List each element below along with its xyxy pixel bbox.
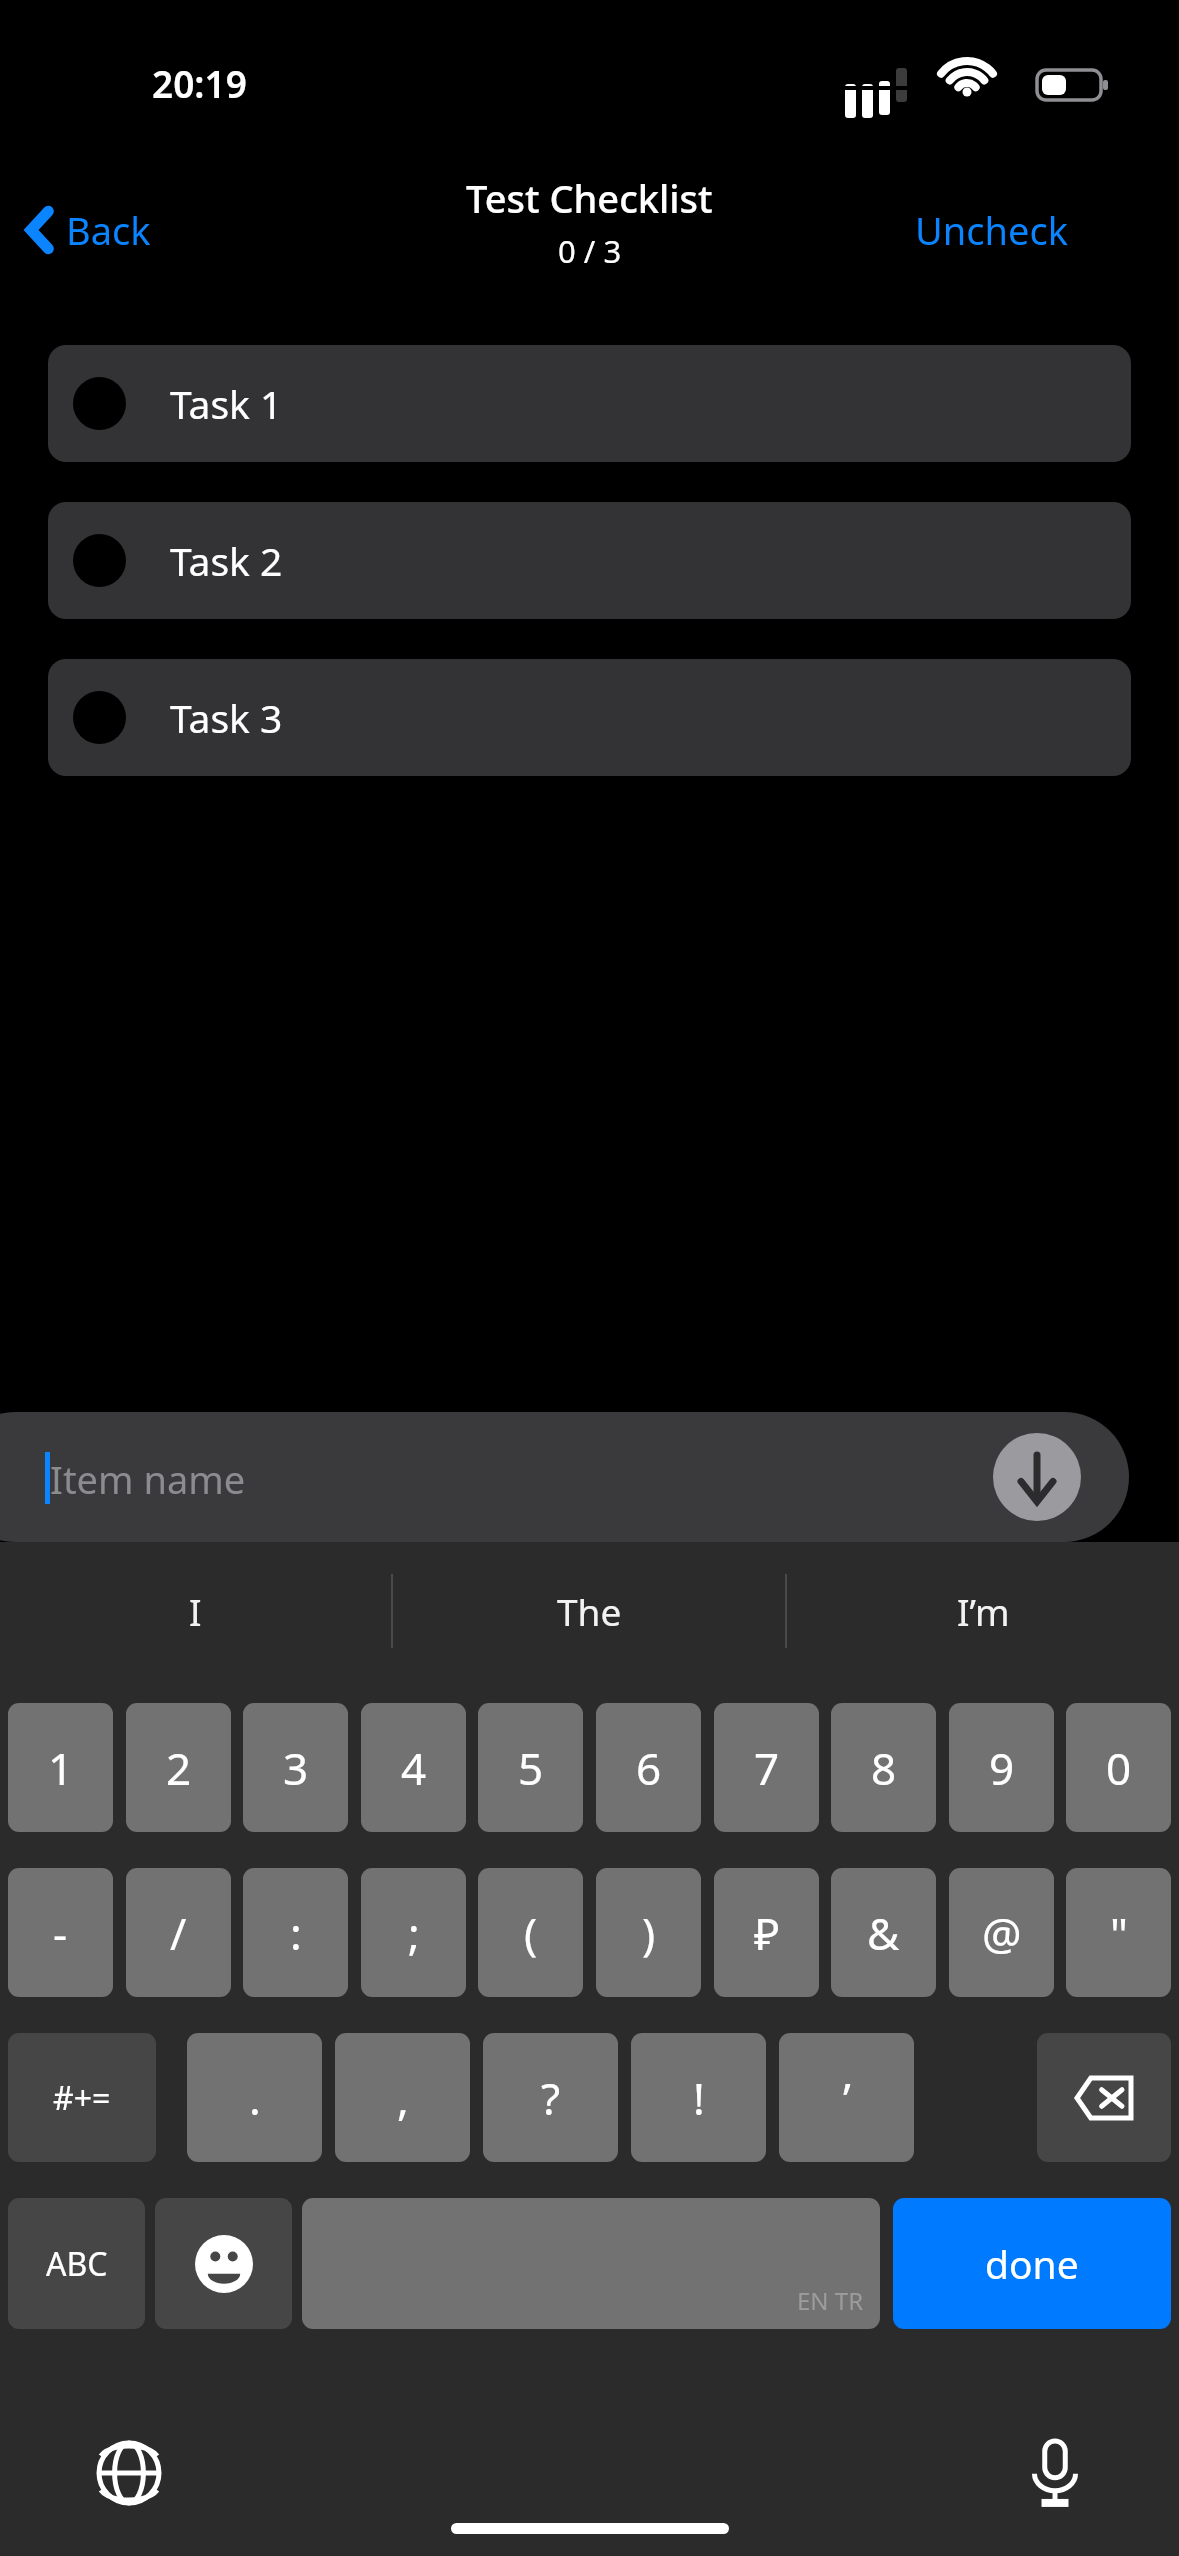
staticText: I xyxy=(189,1586,202,1636)
button[interactable]: ₽ xyxy=(714,1868,819,1997)
button[interactable]: @ xyxy=(949,1868,1054,1997)
staticText: Task 2 xyxy=(170,534,283,587)
staticText: . xyxy=(249,2068,261,2128)
staticText: 4 xyxy=(401,1738,427,1798)
button[interactable]: #+= xyxy=(8,2033,156,2162)
staticText: @ xyxy=(982,1903,1022,1963)
staticText: 8 xyxy=(871,1738,897,1798)
staticText: #+= xyxy=(53,2076,111,2120)
staticText: ’ xyxy=(843,2068,851,2128)
staticText: Uncheck xyxy=(915,204,1068,256)
button[interactable]: Emoji xyxy=(155,2198,292,2329)
button[interactable]: Backspace xyxy=(1037,2033,1171,2162)
button[interactable]: ( xyxy=(478,1868,583,1997)
staticText: 7 xyxy=(754,1738,780,1798)
button[interactable]: Dictation xyxy=(1012,2430,1098,2516)
staticText: Task 1 xyxy=(170,377,283,430)
button[interactable]: 3 xyxy=(243,1703,348,1832)
button[interactable]: . xyxy=(187,2033,322,2162)
staticText: 6 xyxy=(636,1738,662,1798)
staticText: I’m xyxy=(957,1586,1010,1636)
button[interactable]: : xyxy=(243,1868,348,1997)
button[interactable]: Uncheck xyxy=(915,188,1160,272)
button[interactable]: Hide keyboard xyxy=(993,1433,1081,1521)
staticText: 2 xyxy=(166,1738,192,1798)
button[interactable]: The xyxy=(393,1542,785,1679)
button[interactable]: Task 1 xyxy=(48,345,1131,462)
button[interactable]: Item name xyxy=(0,1412,1129,1542)
staticText: The xyxy=(557,1586,622,1636)
staticText: ₽ xyxy=(754,1903,780,1963)
button[interactable]: - xyxy=(8,1868,113,1997)
button[interactable]: Back xyxy=(0,188,250,272)
button[interactable]: ABC xyxy=(8,2198,145,2329)
button[interactable]: 5 xyxy=(478,1703,583,1832)
staticText: : xyxy=(290,1903,302,1963)
button[interactable]: 9 xyxy=(949,1703,1054,1832)
staticText: 9 xyxy=(989,1738,1015,1798)
staticText: 0 / 3 xyxy=(558,230,622,272)
button[interactable]: done xyxy=(893,2198,1171,2329)
button[interactable]: I’m xyxy=(787,1542,1179,1679)
button[interactable]: ; xyxy=(361,1868,466,1997)
staticText: ? xyxy=(541,2068,561,2128)
button[interactable]: 8 xyxy=(831,1703,936,1832)
button[interactable]: ) xyxy=(596,1868,701,1997)
staticText: & xyxy=(867,1903,900,1963)
button[interactable]: Task 2 xyxy=(48,502,1131,619)
button[interactable]: 4 xyxy=(361,1703,466,1832)
button[interactable]: ’ xyxy=(779,2033,914,2162)
button[interactable]: Task 3 xyxy=(48,659,1131,776)
button[interactable]: 6 xyxy=(596,1703,701,1832)
button[interactable]: & xyxy=(831,1868,936,1997)
staticText: 1 xyxy=(48,1738,74,1798)
button[interactable]: 0 xyxy=(1066,1703,1171,1832)
staticText: EN TR xyxy=(797,2284,864,2317)
staticText: ) xyxy=(642,1903,656,1963)
button[interactable]: " xyxy=(1066,1868,1171,1997)
staticText: 5 xyxy=(518,1738,544,1798)
staticText: Back xyxy=(66,204,151,256)
staticText: ! xyxy=(693,2068,705,2128)
staticText: Test Checklist xyxy=(466,172,713,224)
staticText: ; xyxy=(408,1903,420,1963)
button[interactable]: ! xyxy=(631,2033,766,2162)
staticText: ( xyxy=(524,1903,538,1963)
button[interactable]: I xyxy=(0,1542,391,1679)
staticText: ABC xyxy=(46,2242,108,2286)
staticText: 20:19 xyxy=(152,58,247,108)
staticText: , xyxy=(397,2068,409,2128)
staticText: - xyxy=(53,1903,68,1963)
staticText: Task 3 xyxy=(170,691,283,744)
button[interactable]: 2 xyxy=(126,1703,231,1832)
button[interactable]: EN TR xyxy=(302,2198,880,2329)
staticText: Item name xyxy=(50,1453,246,1505)
staticText: 3 xyxy=(283,1738,309,1798)
button[interactable]: 7 xyxy=(714,1703,819,1832)
staticText: " xyxy=(1110,1903,1128,1963)
button[interactable]: , xyxy=(335,2033,470,2162)
button[interactable]: ? xyxy=(483,2033,618,2162)
button[interactable]: 1 xyxy=(8,1703,113,1832)
staticText: done xyxy=(985,2237,1079,2290)
button[interactable]: Next keyboard xyxy=(86,2430,172,2516)
button[interactable]: / xyxy=(126,1868,231,1997)
staticText: / xyxy=(170,1903,187,1963)
staticText: 0 xyxy=(1106,1738,1132,1798)
